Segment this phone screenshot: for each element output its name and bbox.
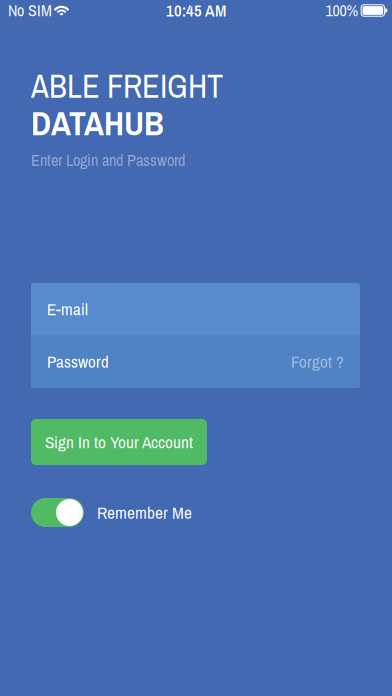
staticText: 10:45 AM [166,0,226,22]
button[interactable]: E-mail [31,283,360,335]
staticText: E-mail [47,297,88,321]
button[interactable]: Remember Me [31,498,392,527]
staticText: DATAHUB [31,100,164,146]
button[interactable]: Password [31,335,360,388]
staticText: Password [47,350,109,373]
staticText: No SIM [8,0,52,21]
button[interactable]: Sign In to Your Account [31,419,207,465]
staticText: ABLE FREIGHT [31,64,223,108]
staticText: 100% [325,0,358,21]
staticText: Enter Login and Password [31,149,185,171]
staticText: Sign In to Your Account [45,430,193,454]
staticText: Remember Me [97,501,192,524]
staticText: Forgot ? [291,350,344,373]
